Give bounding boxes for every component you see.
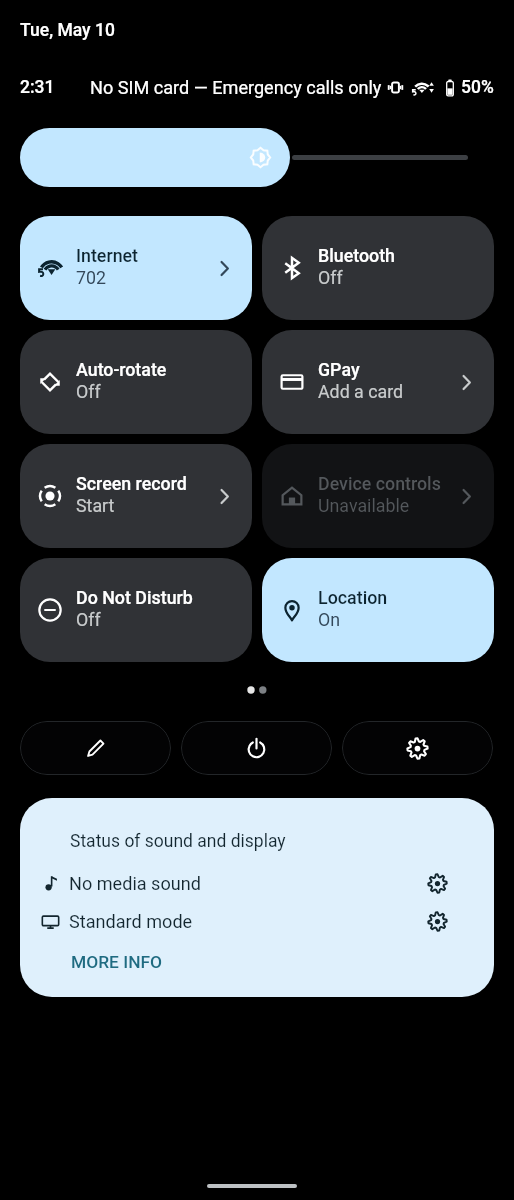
button[interactable]: Power bbox=[181, 721, 332, 775]
staticText: 2:31 bbox=[20, 77, 55, 98]
button[interactable]: Settings bbox=[420, 867, 454, 899]
staticText: Screen record bbox=[76, 473, 187, 494]
staticText: No media sound bbox=[69, 873, 201, 894]
staticText: 702 bbox=[76, 267, 107, 288]
button[interactable]: Internet bbox=[20, 216, 252, 320]
staticText: Auto-rotate bbox=[76, 359, 167, 380]
button[interactable]: Location bbox=[262, 558, 494, 662]
button[interactable]: Bluetooth bbox=[262, 216, 494, 320]
staticText: Status of sound and display bbox=[70, 831, 286, 852]
staticText: Location bbox=[318, 587, 388, 608]
button[interactable]: Screen record bbox=[20, 444, 252, 548]
staticText: Off bbox=[76, 609, 101, 630]
button[interactable]: Auto-rotate bbox=[20, 330, 252, 434]
staticText: 50% bbox=[461, 77, 494, 98]
button[interactable]: Settings bbox=[342, 721, 493, 775]
staticText: Unavailable bbox=[318, 495, 410, 516]
staticText: Start bbox=[76, 495, 115, 516]
button[interactable]: Brightness bbox=[20, 128, 290, 187]
button[interactable]: Device controls bbox=[262, 444, 494, 548]
staticText: GPay bbox=[318, 359, 360, 380]
staticText: Off bbox=[318, 267, 343, 288]
staticText: MORE INFO bbox=[71, 952, 163, 972]
staticText: On bbox=[318, 609, 341, 630]
button[interactable]: Standard mode bbox=[20, 905, 494, 937]
staticText: Internet bbox=[76, 245, 139, 266]
button[interactable]: MORE INFO bbox=[61, 947, 173, 977]
button[interactable]: GPay bbox=[262, 330, 494, 434]
button[interactable]: Edit tiles bbox=[20, 721, 171, 775]
staticText: Off bbox=[76, 381, 101, 402]
button[interactable]: No media sound bbox=[20, 867, 494, 899]
staticText: Add a card bbox=[318, 381, 404, 402]
button[interactable]: Settings bbox=[420, 905, 454, 937]
staticText: Do Not Disturb bbox=[76, 587, 193, 608]
button[interactable]: Do Not Disturb bbox=[20, 558, 252, 662]
staticText: Device controls bbox=[318, 473, 441, 494]
staticText: Bluetooth bbox=[318, 245, 395, 266]
staticText: No SIM card — Emergency calls only bbox=[90, 77, 382, 98]
staticText: Standard mode bbox=[69, 911, 193, 932]
staticText: Tue, May 10 bbox=[20, 20, 115, 41]
